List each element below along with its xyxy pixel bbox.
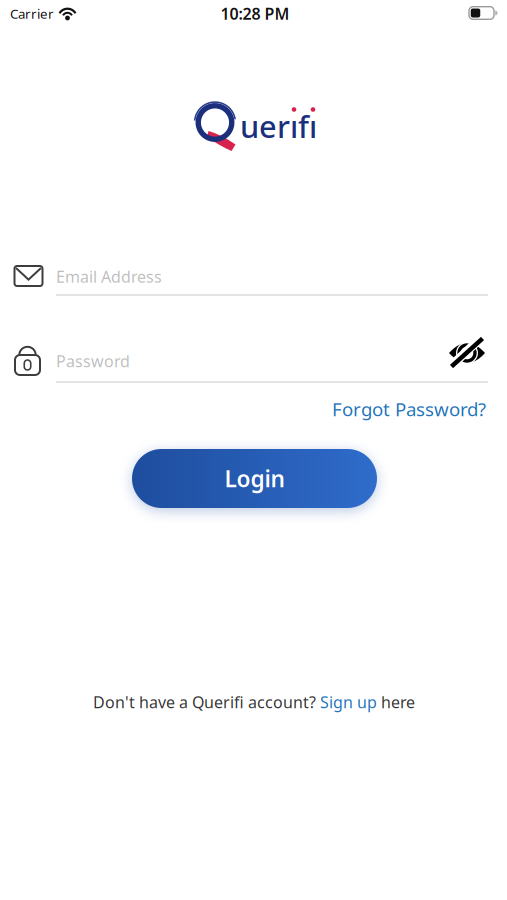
staticText: Email Address [56, 266, 162, 287]
staticText: Carrier [10, 5, 54, 22]
button[interactable]: Forgot Password? [332, 397, 486, 421]
staticText: Password [56, 350, 130, 372]
button[interactable]: Show password [447, 338, 487, 368]
staticText: Don't have a Querifi account? [93, 691, 320, 713]
button[interactable]: Login [132, 449, 377, 508]
staticText: Login [224, 463, 284, 493]
staticText: uerıfı [240, 106, 317, 146]
button[interactable]: Sign up [320, 691, 377, 713]
staticText: 10:28 PM [220, 3, 289, 24]
staticText: here [377, 691, 415, 713]
staticText: Forgot Password? [332, 397, 486, 421]
staticText: Sign up [320, 691, 377, 713]
